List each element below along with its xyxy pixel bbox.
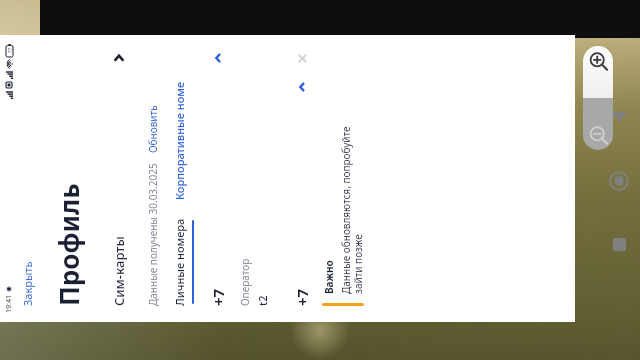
- other: Свернуть: [295, 80, 309, 94]
- staticText: t2: [255, 295, 270, 306]
- staticText: +7: [208, 288, 228, 306]
- button[interactable]: Запись: [606, 168, 632, 194]
- button[interactable]: Свернуть панель: [608, 106, 630, 128]
- staticText: Данные получены 30.03.2025: [146, 163, 160, 306]
- staticText: Корпоративные номе: [172, 81, 187, 200]
- staticText: +7: [292, 288, 312, 306]
- staticText: Профиль: [51, 183, 86, 306]
- button[interactable]: +7: [208, 35, 270, 322]
- button[interactable]: Масштаб: [583, 46, 613, 150]
- staticText: Закрыть: [20, 261, 35, 306]
- button[interactable]: +7: [292, 35, 365, 322]
- staticText: 19:41: [4, 295, 14, 313]
- button[interactable]: Корпоративные номе: [172, 81, 187, 200]
- button[interactable]: Закрыть: [295, 51, 310, 66]
- button[interactable]: Обновить: [144, 103, 162, 155]
- staticText: Сим-карты: [110, 236, 128, 306]
- button[interactable]: Личные номера: [172, 218, 194, 306]
- staticText: 77: [7, 47, 13, 53]
- button[interactable]: Сим-карты: [100, 35, 138, 322]
- staticText: Важно: [322, 260, 336, 294]
- other: Свернуть: [211, 51, 225, 65]
- staticText: Личные номера: [172, 218, 187, 306]
- button[interactable]: Закрыть: [18, 35, 41, 322]
- staticText: Оператор: [238, 258, 252, 306]
- button[interactable]: Стоп: [607, 232, 631, 256]
- staticText: Обновить: [146, 105, 160, 153]
- staticText: Данные обновляются, попробуйте зайти поз…: [339, 126, 365, 294]
